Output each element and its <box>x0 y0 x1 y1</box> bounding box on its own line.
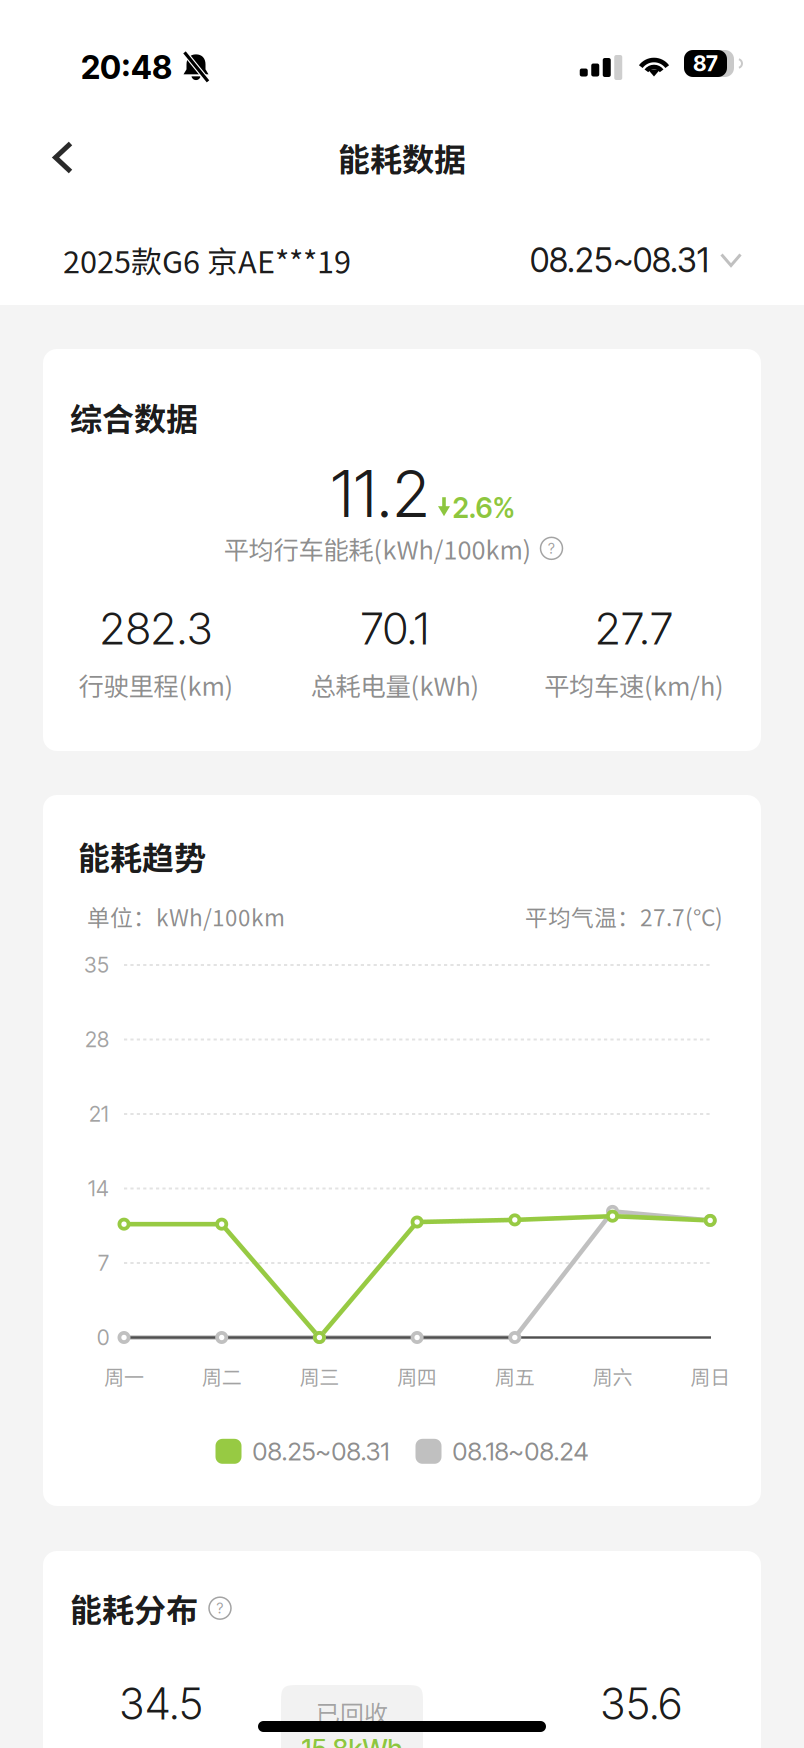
staticText: 0 <box>97 1325 109 1350</box>
staticText: ? <box>548 539 555 557</box>
button[interactable]: 08.25~08.31 <box>530 240 742 280</box>
staticText: 08.25~08.31 <box>530 240 709 280</box>
staticText: 能耗趋势 <box>78 833 206 879</box>
staticText: 周日 <box>690 1361 730 1390</box>
staticText: 7 <box>98 1250 109 1276</box>
staticText: 20:48 <box>81 48 172 87</box>
staticText: 27.7 <box>595 602 673 655</box>
staticText: 周一 <box>104 1361 144 1390</box>
staticText: 28 <box>85 1027 109 1052</box>
staticText: 综合数据 <box>70 394 198 440</box>
staticText: 15.8kWh <box>301 1733 402 1748</box>
staticText: 87 <box>693 51 718 76</box>
staticText: 14 <box>88 1176 109 1201</box>
staticText: 282.3 <box>99 602 212 655</box>
staticText: ? <box>216 1599 223 1617</box>
staticText: 平均行车能耗(kWh/100km) <box>223 530 531 567</box>
staticText: 08.25~08.31 <box>252 1436 389 1467</box>
staticText: 能耗分布 <box>70 1585 198 1631</box>
staticText: 已回收 <box>316 1695 388 1730</box>
staticText: 34.5 <box>119 1678 203 1730</box>
staticText: 2.6% <box>452 491 515 525</box>
staticText: 周四 <box>397 1361 437 1390</box>
staticText: 21 <box>89 1101 109 1127</box>
staticText: 11.2 <box>330 455 429 532</box>
staticText: 周二 <box>202 1361 242 1390</box>
staticText: 周六 <box>592 1361 632 1390</box>
staticText: 平均车速(km/h) <box>544 666 724 703</box>
staticText: 35.6 <box>600 1678 682 1730</box>
staticText: 35 <box>84 952 109 978</box>
staticText: 周五 <box>495 1361 535 1390</box>
staticText: 单位：kWh/100km <box>87 900 285 933</box>
staticText: 08.18~08.24 <box>452 1436 588 1467</box>
staticText: 行驶里程(km) <box>78 666 233 703</box>
staticText: 总耗电量(kWh) <box>310 666 479 703</box>
staticText: 周三 <box>299 1361 339 1390</box>
staticText: 平均气温：27.7(°C) <box>525 900 723 933</box>
staticText: 2025款G6 京AE***19 <box>63 238 351 282</box>
staticText: 能耗数据 <box>338 134 466 181</box>
button[interactable]: 返回 <box>30 121 96 193</box>
staticText: 70.1 <box>360 602 429 655</box>
